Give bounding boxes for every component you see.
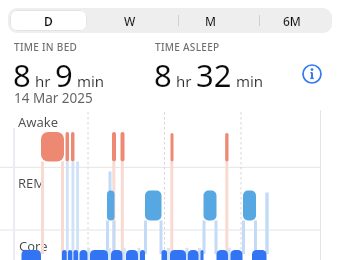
staticText: TIME ASLEEP: [155, 40, 220, 54]
button[interactable]: [300, 62, 324, 86]
staticText: M: [205, 13, 217, 29]
button[interactable]: D: [10, 10, 87, 31]
button[interactable]: M: [170, 8, 251, 33]
staticText: hr: [172, 71, 196, 91]
staticText: 32: [196, 54, 232, 96]
staticText: REM: [18, 174, 46, 192]
staticText: hr: [31, 71, 55, 91]
staticText: Awake: [18, 113, 59, 131]
staticText: D: [44, 13, 53, 29]
button[interactable]: 6M: [251, 8, 332, 33]
staticText: W: [124, 13, 136, 29]
staticText: min: [232, 71, 264, 91]
staticText: min: [73, 71, 105, 91]
staticText: Core: [19, 237, 48, 255]
staticText: 9: [55, 54, 73, 96]
staticText: 6M: [283, 13, 301, 29]
staticText: TIME IN BED: [14, 40, 78, 54]
staticText: 14 Mar 2025: [14, 89, 93, 107]
staticText: 8: [154, 54, 172, 96]
staticText: 8: [13, 54, 31, 96]
button[interactable]: W: [89, 8, 170, 33]
